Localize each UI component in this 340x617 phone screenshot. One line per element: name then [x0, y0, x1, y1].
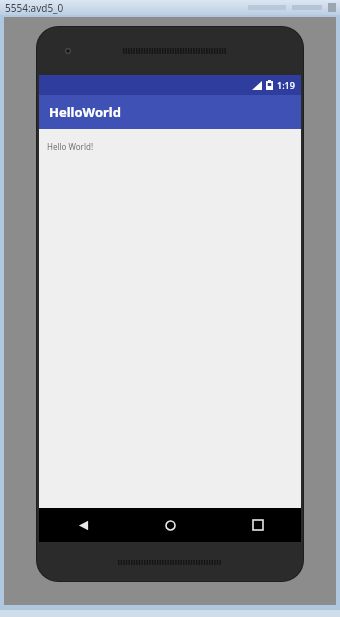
button[interactable]: Recent apps [214, 508, 301, 542]
staticText: HelloWorld [49, 103, 121, 121]
staticText: Hello World! [47, 141, 94, 152]
staticText: 1:19 [277, 79, 295, 91]
button[interactable]: Back [39, 508, 127, 542]
button[interactable]: Home [127, 508, 214, 542]
staticText: 5554:avd5_0 [5, 1, 64, 15]
button[interactable]: HelloWorld [39, 95, 301, 129]
